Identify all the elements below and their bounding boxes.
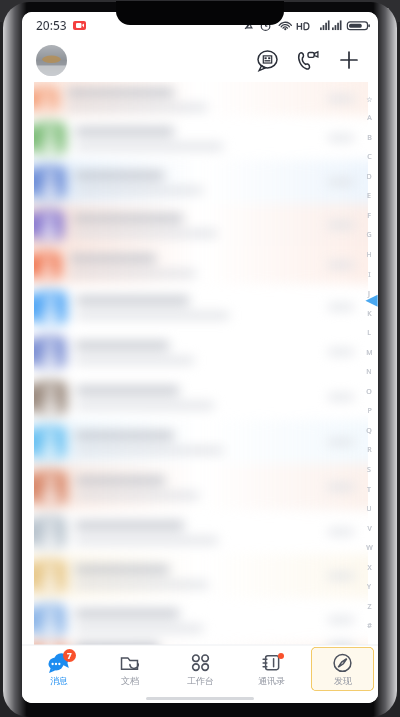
staticText: Y (367, 582, 371, 592)
staticText: 7 (67, 650, 72, 661)
staticText: L (367, 328, 371, 338)
staticText: 发现 (334, 675, 352, 686)
staticText: 通讯录 (258, 675, 285, 686)
staticText: D (366, 172, 372, 182)
staticText: J (368, 289, 370, 299)
staticText: A (367, 113, 372, 123)
button[interactable]: 通讯录 (240, 647, 303, 691)
staticText: C (367, 152, 372, 162)
staticText: R (367, 445, 372, 455)
staticText: 文档 (121, 675, 139, 686)
staticText: 工作台 (187, 675, 214, 686)
staticText: E (367, 191, 371, 201)
staticText: W (366, 543, 373, 553)
staticText: B (367, 133, 372, 143)
button[interactable]: 工作台 (169, 647, 232, 691)
staticText: I (368, 270, 371, 280)
staticText: P (367, 406, 372, 416)
staticText: Q (366, 426, 372, 436)
staticText: T (367, 485, 371, 495)
staticText: 20:53 (36, 17, 67, 33)
staticText: Z (367, 602, 372, 612)
staticText: # (367, 621, 372, 631)
staticText: H (366, 250, 372, 260)
staticText: F (367, 211, 371, 221)
staticText: M (366, 348, 373, 358)
staticText: K/s (53, 7, 62, 15)
staticText: 消息 (50, 675, 68, 686)
staticText: ☆ (366, 96, 373, 104)
staticText: X (367, 563, 372, 573)
staticText: U (366, 504, 372, 514)
staticText: O (366, 387, 372, 397)
staticText: V (367, 524, 372, 534)
button[interactable]: Video call (291, 43, 325, 77)
button[interactable]: 文档 (98, 647, 161, 691)
button[interactable]: 发现 (311, 647, 374, 691)
button[interactable]: Profile avatar (36, 45, 67, 76)
staticText: K (367, 309, 372, 319)
staticText: 10:10 (369, 6, 390, 17)
button[interactable]: Smart assistant chat (250, 43, 284, 77)
staticText: G (366, 230, 372, 240)
button[interactable]: 7 (26, 647, 90, 691)
button[interactable]: Add (332, 43, 366, 77)
staticText: N (366, 367, 372, 377)
staticText: S (367, 465, 371, 475)
